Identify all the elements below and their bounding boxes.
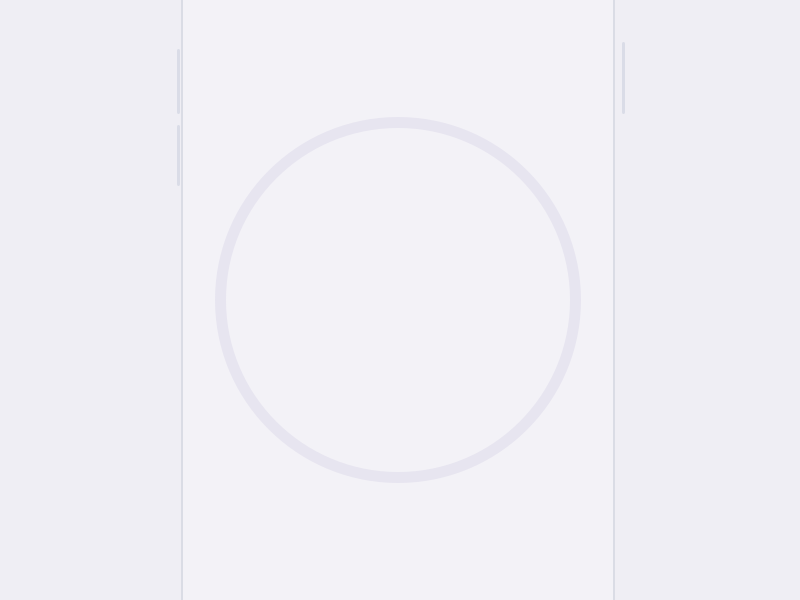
button[interactable]: Progress ring <box>220 122 575 477</box>
